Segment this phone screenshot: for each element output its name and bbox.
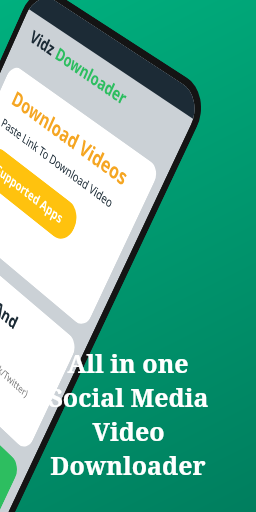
staticText: Vidz [27, 24, 62, 63]
staticText: Video [92, 414, 165, 448]
staticText: (TikTok/Instagram/Facebook/Twitter) [0, 293, 31, 401]
staticText: All in one [67, 346, 189, 380]
staticText: Downloader [50, 448, 206, 482]
staticText: Downloader [52, 42, 131, 110]
staticText: Paste Link And Download [0, 248, 72, 400]
staticText: Supported Apps [0, 160, 66, 227]
staticText: Download Videos [8, 84, 133, 192]
staticText: Social Media [48, 380, 209, 414]
staticText: Paste Link To Download Video [0, 114, 116, 211]
